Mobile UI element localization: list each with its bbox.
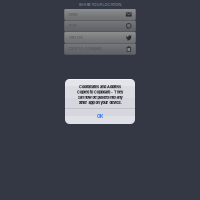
staticText: other app on your device. [78, 100, 121, 105]
staticText: can now be pasted into any [77, 95, 122, 100]
button[interactable]: OK [65, 108, 135, 124]
staticText: Copied to Clipboard - They [77, 90, 123, 94]
staticText: COPY TO CLIPBOARD [68, 47, 101, 51]
button[interactable]: COPY TO CLIPBOARD [64, 43, 136, 54]
staticText: EMAIL [68, 12, 78, 16]
staticText: SHARE YOUR LOCATION [78, 2, 121, 7]
staticText: Coordinates and Address [79, 84, 121, 89]
staticText: TEXT [68, 24, 76, 28]
staticText: TWITTER [68, 35, 82, 39]
button[interactable]: EMAIL [64, 9, 136, 20]
button[interactable]: TEXT [64, 20, 136, 31]
staticText: OK [97, 113, 103, 119]
button[interactable]: TWITTER [64, 32, 136, 43]
